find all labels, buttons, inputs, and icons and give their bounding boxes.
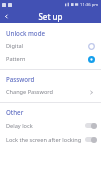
staticText: Password — [6, 75, 35, 83]
staticText: Digital — [6, 42, 24, 50]
staticText: Lock the screen after locking — [6, 136, 82, 144]
staticText: Pattern — [6, 55, 26, 63]
staticText: Set up — [38, 11, 63, 22]
staticText: Unlock mode — [6, 29, 46, 37]
staticText: Delay lock — [6, 122, 33, 130]
button[interactable]: Pattern — [0, 53, 101, 65]
button[interactable]: Lock the screen after locking — [0, 133, 101, 146]
button[interactable]: Delay lock — [0, 119, 101, 132]
staticText: Other — [6, 108, 24, 116]
staticText: Change Password — [6, 88, 53, 96]
staticText: 11:36 pm — [80, 2, 99, 8]
button[interactable]: Digital — [0, 40, 101, 52]
button[interactable]: Back — [0, 10, 13, 23]
button[interactable]: Change Password — [0, 86, 101, 98]
